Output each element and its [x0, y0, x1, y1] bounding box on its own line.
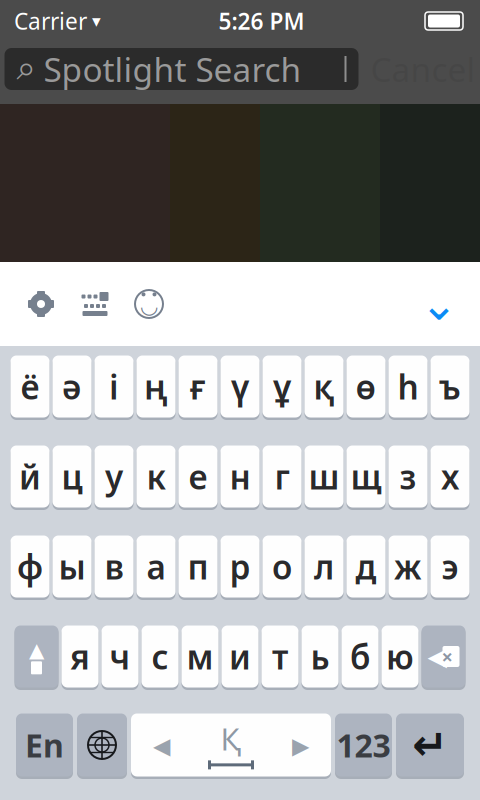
button[interactable]: Hide keyboard	[412, 276, 466, 332]
staticText: х	[441, 454, 459, 499]
button[interactable]: ы	[52, 535, 91, 600]
staticText: ь	[310, 634, 329, 679]
staticText: ч	[109, 634, 130, 679]
button[interactable]: я	[61, 625, 98, 690]
button[interactable]: Delete	[421, 625, 465, 690]
button[interactable]: у	[94, 445, 133, 510]
staticText: En	[25, 724, 64, 766]
staticText: Carrier	[14, 6, 87, 36]
staticText: ◡	[141, 293, 157, 318]
staticText: қ	[313, 364, 334, 409]
button[interactable]: Next keyboard	[77, 713, 127, 779]
button[interactable]: і	[94, 355, 133, 420]
button[interactable]: ш	[304, 445, 343, 510]
staticText: ⌕	[16, 52, 35, 86]
staticText: ▲	[29, 639, 44, 661]
button[interactable]: Numbers	[335, 713, 392, 779]
button[interactable]: ү	[220, 355, 259, 420]
staticText: ц	[61, 454, 82, 499]
button[interactable]: ф	[10, 535, 49, 600]
button[interactable]: ч	[101, 625, 138, 690]
button[interactable]: к	[136, 445, 175, 510]
staticText: з	[399, 454, 416, 499]
button[interactable]: Return	[396, 713, 464, 779]
button[interactable]: Shift	[14, 625, 58, 690]
button[interactable]: ь	[301, 625, 338, 690]
staticText: 5:26 PM	[218, 6, 304, 36]
staticText: н	[229, 454, 250, 499]
staticText: п	[187, 544, 208, 589]
staticText: щ	[350, 454, 381, 499]
button[interactable]: б	[341, 625, 378, 690]
button[interactable]: Keyboard settings	[14, 276, 68, 332]
staticText: я	[70, 634, 90, 679]
button[interactable]: э	[430, 535, 469, 600]
button[interactable]: ә	[52, 355, 91, 420]
staticText: ө	[355, 364, 376, 409]
staticText: т	[272, 634, 288, 679]
button[interactable]: т	[261, 625, 298, 690]
button[interactable]: ң	[136, 355, 175, 420]
button[interactable]: й	[10, 445, 49, 510]
staticText: 123	[336, 724, 390, 766]
staticText: э	[441, 544, 458, 589]
button[interactable]: о	[262, 535, 301, 600]
button[interactable]: п	[178, 535, 217, 600]
button[interactable]: қ	[304, 355, 343, 420]
staticText: ▾	[92, 11, 101, 31]
staticText: ↵	[412, 721, 448, 769]
staticText: о	[272, 544, 292, 589]
button[interactable]: а	[136, 535, 175, 600]
button[interactable]: ю	[381, 625, 418, 690]
staticText: ж	[394, 544, 422, 589]
button[interactable]: ж	[388, 535, 427, 600]
button[interactable]: ұ	[262, 355, 301, 420]
button[interactable]: г	[262, 445, 301, 510]
staticText: ×	[441, 643, 452, 670]
staticText: ◀	[427, 642, 446, 671]
staticText: д	[355, 544, 376, 589]
staticText: ә	[62, 364, 82, 409]
button[interactable]: е	[178, 445, 217, 510]
button[interactable]: с	[141, 625, 178, 690]
button[interactable]: м	[181, 625, 218, 690]
button[interactable]: ө	[346, 355, 385, 420]
staticText: ъ	[439, 364, 461, 409]
button[interactable]: ъ	[430, 355, 469, 420]
staticText: в	[104, 544, 123, 589]
button[interactable]: Keyboard layout	[68, 276, 122, 332]
staticText: ◀	[153, 733, 170, 759]
button[interactable]: Space	[131, 713, 331, 779]
button[interactable]: ё	[10, 355, 49, 420]
staticText: л	[314, 544, 334, 589]
button[interactable]: х	[430, 445, 469, 510]
staticText: Қ	[220, 718, 241, 759]
button[interactable]: з	[388, 445, 427, 510]
staticText: р	[229, 544, 250, 589]
staticText: ш	[308, 454, 339, 499]
button[interactable]: д	[346, 535, 385, 600]
button[interactable]: ⌕	[4, 48, 358, 90]
staticText: Spotlight Search	[43, 47, 301, 91]
staticText: б	[350, 634, 370, 679]
button[interactable]: н	[220, 445, 259, 510]
button[interactable]: һ	[388, 355, 427, 420]
button[interactable]: и	[221, 625, 258, 690]
button[interactable]: English	[16, 713, 73, 779]
staticText: г	[274, 454, 289, 499]
staticText: ⌄	[420, 278, 458, 330]
staticText: і	[109, 364, 119, 409]
button[interactable]: Emoji	[122, 276, 176, 332]
staticText: ң	[144, 364, 168, 409]
button[interactable]: р	[220, 535, 259, 600]
button[interactable]: щ	[346, 445, 385, 510]
button[interactable]: л	[304, 535, 343, 600]
button[interactable]: ғ	[178, 355, 217, 420]
button[interactable]: в	[94, 535, 133, 600]
staticText: м	[186, 634, 213, 679]
button[interactable]: ц	[52, 445, 91, 510]
staticText: ё	[20, 364, 39, 409]
staticText: ұ	[273, 364, 291, 409]
